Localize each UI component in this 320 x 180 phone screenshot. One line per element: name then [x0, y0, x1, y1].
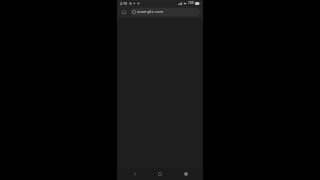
- button[interactable]: Back: [127, 168, 143, 180]
- staticText: example.com: [137, 9, 164, 15]
- button[interactable]: Recent apps: [178, 168, 194, 180]
- button[interactable]: example.com: [130, 8, 200, 16]
- button[interactable]: Home: [120, 8, 128, 16]
- staticText: 100: [188, 1, 194, 5]
- staticText: 2:19: [120, 1, 127, 6]
- button[interactable]: Home: [152, 168, 168, 180]
